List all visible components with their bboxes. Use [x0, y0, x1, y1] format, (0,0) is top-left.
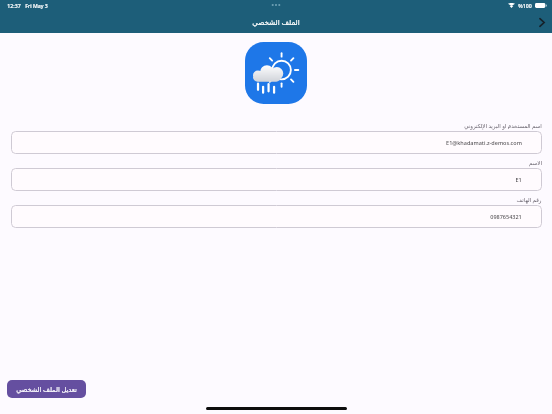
staticText: %100 — [518, 2, 532, 9]
staticText: E1@khadamati.z-demos.com — [446, 139, 522, 146]
staticText: رقم الهاتف — [516, 196, 542, 203]
staticText: E1 — [515, 176, 522, 183]
staticText: الملف الشخصي — [252, 17, 300, 27]
staticText: اسم المستخدم او البريد الإلكتروني — [464, 122, 542, 129]
button[interactable]: تعديل الملف الشخصي — [7, 380, 86, 398]
button[interactable]: E1 — [11, 168, 542, 191]
staticText: تعديل الملف الشخصي — [16, 385, 77, 394]
button[interactable]: E1@khadamati.z-demos.com — [11, 131, 542, 154]
staticText: الاسم — [529, 160, 542, 166]
button[interactable]: 0987654321 — [11, 205, 542, 228]
other: Profile picture — [245, 42, 307, 104]
staticText: 0987654321 — [490, 213, 522, 220]
button[interactable]: Back — [532, 12, 552, 32]
staticText: Fri May 3 — [25, 2, 48, 9]
staticText: 12:37 — [7, 2, 21, 9]
